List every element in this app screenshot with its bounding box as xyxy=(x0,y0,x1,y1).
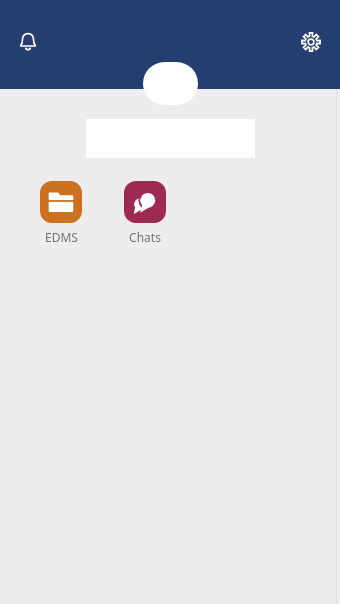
button[interactable]: EDMS xyxy=(34,181,88,245)
staticText: Chats xyxy=(129,229,161,245)
button[interactable]: Profile photo xyxy=(143,62,198,105)
staticText: EDMS xyxy=(45,229,78,245)
button[interactable]: Chats xyxy=(118,181,172,245)
button[interactable]: Notifications xyxy=(8,22,48,62)
button[interactable]: Settings xyxy=(291,22,331,62)
